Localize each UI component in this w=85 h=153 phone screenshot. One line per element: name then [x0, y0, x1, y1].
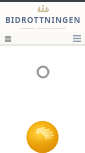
button[interactable]: Honey product	[24, 121, 61, 153]
button[interactable]: Language	[3, 34, 12, 43]
button[interactable]: Menu	[71, 33, 82, 44]
staticText: SVERIGES FINASTE HONUNG	[20, 26, 66, 29]
staticText: BIDROTTNINGEN	[5, 14, 81, 25]
